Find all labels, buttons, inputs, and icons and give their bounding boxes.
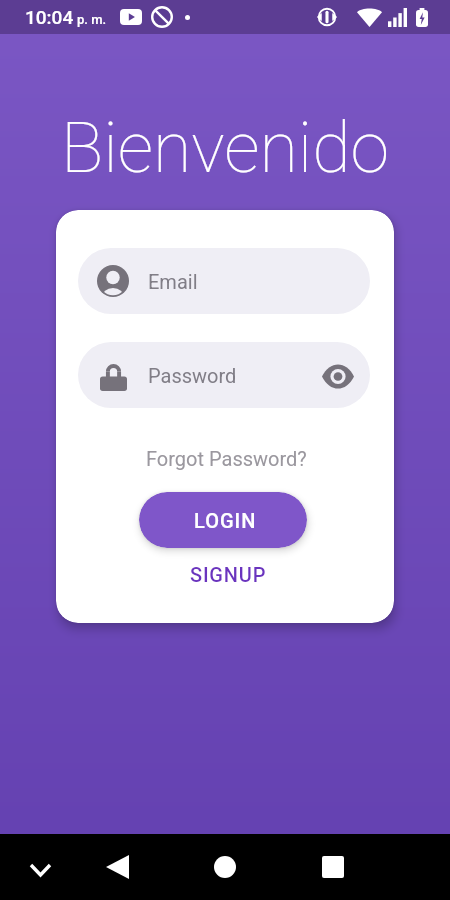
staticText: 10:04 xyxy=(25,6,74,28)
staticText: p. m. xyxy=(77,12,107,27)
staticText: Email xyxy=(148,270,198,293)
button[interactable]: Recent apps xyxy=(311,845,355,889)
button[interactable]: Email xyxy=(78,248,370,314)
button[interactable]: Password xyxy=(78,342,370,408)
staticText: SIGNUP xyxy=(190,563,267,586)
staticText: Bienvenido xyxy=(61,107,390,189)
button[interactable]: Show password xyxy=(316,354,360,398)
button[interactable]: LOGIN xyxy=(139,492,307,548)
button[interactable]: Hide keyboard xyxy=(18,848,62,892)
button[interactable]: Back xyxy=(95,845,139,889)
staticText: Forgot Password? xyxy=(146,447,307,470)
staticText: LOGIN xyxy=(194,509,257,532)
staticText: Password xyxy=(148,364,237,387)
button[interactable]: Home xyxy=(203,845,247,889)
button[interactable]: SIGNUP xyxy=(178,555,279,594)
button[interactable]: Forgot Password? xyxy=(136,439,317,478)
